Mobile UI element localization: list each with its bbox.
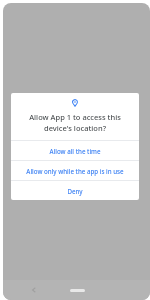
button[interactable]: Home [67,282,87,298]
button[interactable]: Allow only while the app is in use [11,161,139,180]
button[interactable]: Back [27,283,41,297]
staticText: Deny [15,187,135,195]
staticText: Allow all the time [15,147,135,155]
staticText: Allow App 1 to access this device's loca… [17,112,133,133]
button[interactable]: Allow all the time [11,141,139,160]
staticText: Allow only while the app is in use [15,167,135,175]
button[interactable]: Deny [11,181,139,200]
